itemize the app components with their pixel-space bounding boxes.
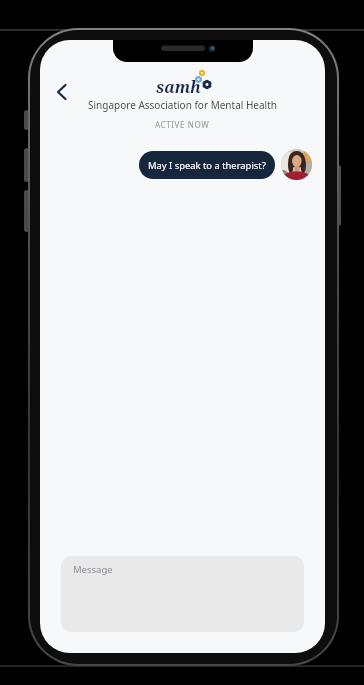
staticText: ACTIVE NOW (155, 119, 210, 130)
staticText: samh (156, 76, 201, 98)
staticText: Message (73, 563, 113, 576)
button[interactable]: May I speak to a therapist? (139, 151, 275, 179)
staticText: Singapore Association for Mental Health (88, 98, 277, 112)
button[interactable] (281, 149, 312, 180)
button[interactable]: Message (61, 556, 304, 632)
button[interactable]: samh (154, 68, 212, 94)
staticText: May I speak to a therapist? (148, 159, 266, 172)
button[interactable] (49, 80, 73, 104)
